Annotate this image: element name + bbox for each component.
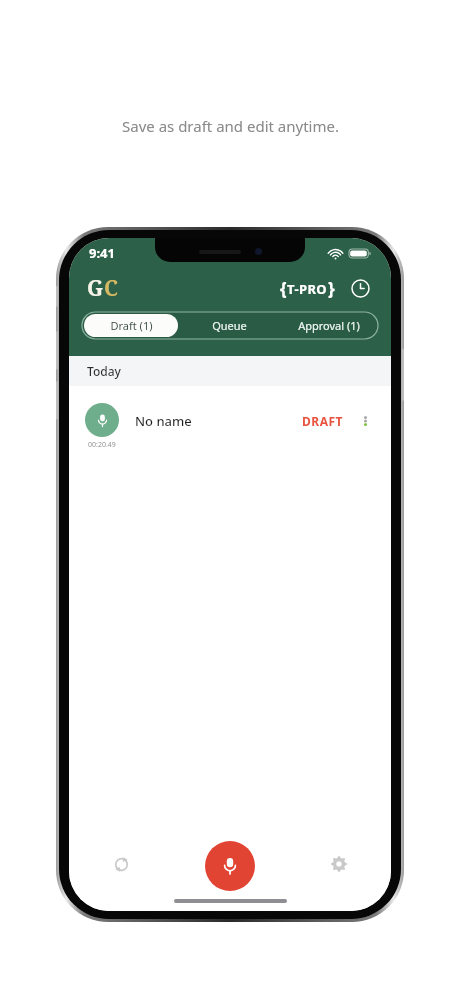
staticText: No name xyxy=(135,412,192,430)
button[interactable]: Sync xyxy=(103,846,139,882)
staticText: Today xyxy=(87,363,121,379)
button[interactable]: { xyxy=(280,277,335,300)
staticText: Save as draft and edit anytime. xyxy=(122,116,339,136)
button[interactable]: Approval (1) xyxy=(281,314,376,337)
staticText: Approval (1) xyxy=(298,318,360,333)
button[interactable]: History xyxy=(347,275,373,301)
staticText: 00:20.49 xyxy=(88,440,116,450)
staticText: Draft (1) xyxy=(110,318,153,333)
button[interactable]: Draft (1) xyxy=(84,314,178,337)
button[interactable]: 00:20.49 xyxy=(69,398,391,454)
staticText: Queue xyxy=(212,318,247,333)
staticText: C xyxy=(104,274,119,303)
button[interactable]: Record xyxy=(205,841,255,891)
staticText: { xyxy=(280,277,287,300)
staticText: G xyxy=(87,274,104,303)
staticText: } xyxy=(328,277,335,300)
staticText: 9:41 xyxy=(89,244,115,262)
button[interactable]: Queue xyxy=(182,314,277,337)
button[interactable]: Settings xyxy=(321,846,357,882)
staticText: DRAFT xyxy=(302,413,343,429)
button[interactable]: More options xyxy=(355,416,375,436)
staticText: T-PRO xyxy=(287,280,328,298)
